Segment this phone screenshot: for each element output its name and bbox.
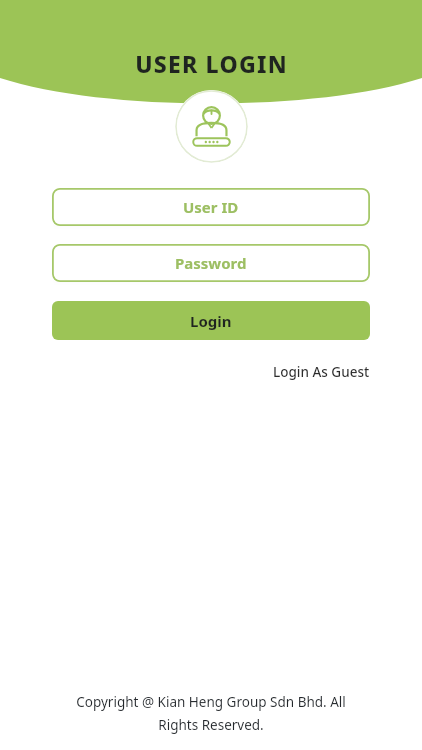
staticText: Copyright @ Kian Heng Group Sdn Bhd. All… — [60, 693, 362, 734]
staticText: Password — [175, 253, 247, 273]
staticText: User ID — [183, 197, 239, 217]
staticText: USER LOGIN — [135, 48, 288, 79]
button[interactable]: Login As Guest — [271, 360, 372, 384]
staticText: Login As Guest — [273, 363, 370, 381]
button[interactable]: Login — [52, 301, 370, 340]
button[interactable]: Password — [52, 244, 370, 282]
button[interactable]: User ID — [52, 188, 370, 226]
staticText: Login — [190, 311, 232, 331]
